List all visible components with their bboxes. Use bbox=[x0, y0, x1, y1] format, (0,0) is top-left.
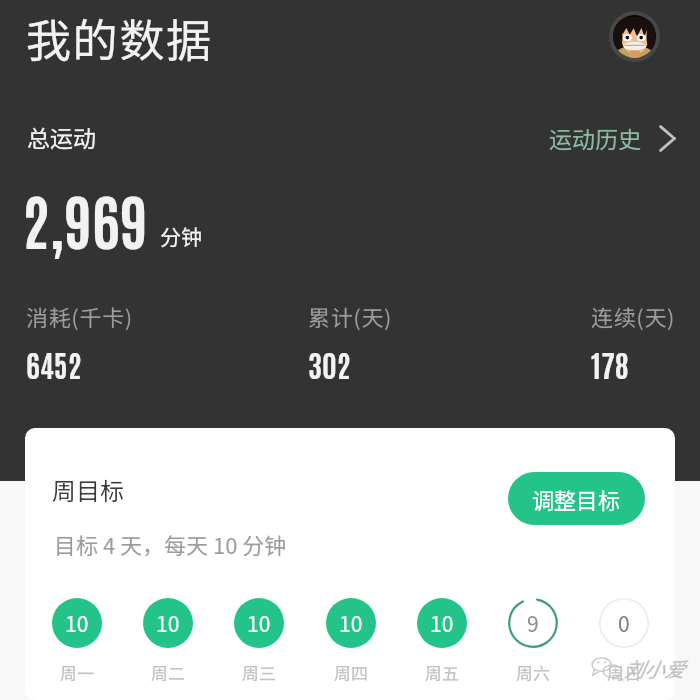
staticText: 周三 bbox=[242, 660, 276, 685]
button[interactable]: 10 bbox=[52, 598, 102, 685]
staticText: 连续(天) bbox=[591, 300, 676, 332]
button[interactable]: 10 bbox=[417, 598, 467, 685]
staticText: 9 bbox=[527, 608, 539, 638]
staticText: 消耗(千卡) bbox=[26, 300, 133, 332]
button[interactable]: 10 bbox=[234, 598, 284, 685]
staticText: 刘小爱 bbox=[624, 654, 684, 683]
staticText: 10 bbox=[65, 608, 89, 638]
staticText: 我的数据 bbox=[26, 5, 213, 70]
staticText: 0 bbox=[618, 608, 630, 638]
staticText: 周五 bbox=[425, 660, 459, 685]
staticText: 10 bbox=[156, 608, 180, 638]
staticText: 周日 bbox=[607, 660, 641, 685]
staticText: 运动历史 bbox=[549, 121, 641, 154]
staticText: 总运动 bbox=[27, 120, 96, 153]
staticText: 178 bbox=[591, 344, 629, 383]
staticText: 周四 bbox=[334, 660, 368, 685]
other: Open exercise history bbox=[659, 125, 676, 152]
staticText: 10 bbox=[339, 608, 363, 638]
staticText: 周六 bbox=[516, 660, 550, 685]
staticText: 累计(天) bbox=[308, 300, 393, 332]
staticText: 302 bbox=[308, 344, 351, 383]
staticText: 2,969 bbox=[22, 180, 148, 258]
staticText: 调整目标 bbox=[532, 483, 621, 515]
button[interactable]: Profile bbox=[609, 11, 660, 62]
staticText: 10 bbox=[430, 608, 454, 638]
button[interactable]: 9 bbox=[508, 598, 558, 685]
staticText: 6452 bbox=[26, 344, 82, 383]
staticText: 周二 bbox=[151, 660, 185, 685]
button[interactable]: 0 bbox=[599, 598, 649, 685]
staticText: 周目标 bbox=[52, 472, 124, 507]
button[interactable]: 10 bbox=[326, 598, 376, 685]
staticText: 10 bbox=[247, 608, 271, 638]
button[interactable]: 调整目标 bbox=[508, 472, 645, 525]
staticText: 周一 bbox=[60, 660, 94, 685]
staticText: 目标 4 天，每天 10 分钟 bbox=[54, 528, 287, 560]
staticText: 分钟 bbox=[160, 221, 202, 251]
button[interactable]: 10 bbox=[143, 598, 193, 685]
button[interactable]: 运动历史 bbox=[540, 110, 685, 170]
